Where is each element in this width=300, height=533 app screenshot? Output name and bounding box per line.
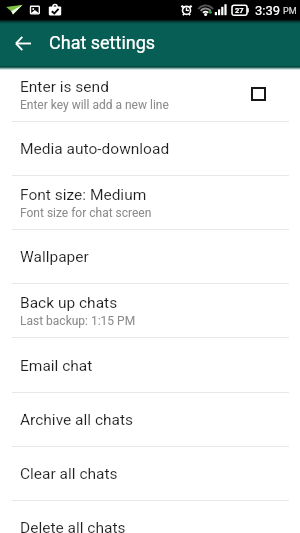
staticText: Clear all chats	[20, 465, 118, 483]
button[interactable]: Back up chats	[0, 283, 300, 337]
button[interactable]: Enter is send	[0, 67, 300, 121]
button[interactable]: Clear all chats	[0, 446, 300, 500]
button[interactable]: Font size: Medium	[0, 175, 300, 229]
button[interactable]: Wallpaper	[0, 229, 300, 283]
staticText: Back up chats	[20, 294, 118, 312]
button[interactable]: Email chat	[0, 338, 300, 392]
staticText: Font size: Medium	[20, 186, 147, 204]
staticText: Font size for chat screen	[20, 206, 152, 220]
button[interactable]: Back	[6, 26, 40, 60]
staticText: Chat settings	[49, 32, 156, 53]
staticText: Wallpaper	[20, 248, 89, 266]
staticText: PM	[283, 6, 297, 17]
staticText: Enter is send	[20, 78, 109, 96]
staticText: Enter key will add a new line	[20, 98, 169, 112]
staticText: Email chat	[20, 357, 93, 375]
staticText: Last backup: 1:15 PM	[20, 314, 136, 328]
staticText: Delete all chats	[20, 519, 126, 533]
button[interactable]: Delete all chats	[0, 500, 300, 533]
button[interactable]: Media auto-download	[0, 121, 300, 175]
button[interactable]: Archive all chats	[0, 392, 300, 446]
staticText: Archive all chats	[20, 411, 134, 429]
staticText: Media auto-download	[20, 140, 170, 158]
staticText: 3:39	[255, 3, 281, 18]
staticText: 27	[235, 6, 244, 15]
